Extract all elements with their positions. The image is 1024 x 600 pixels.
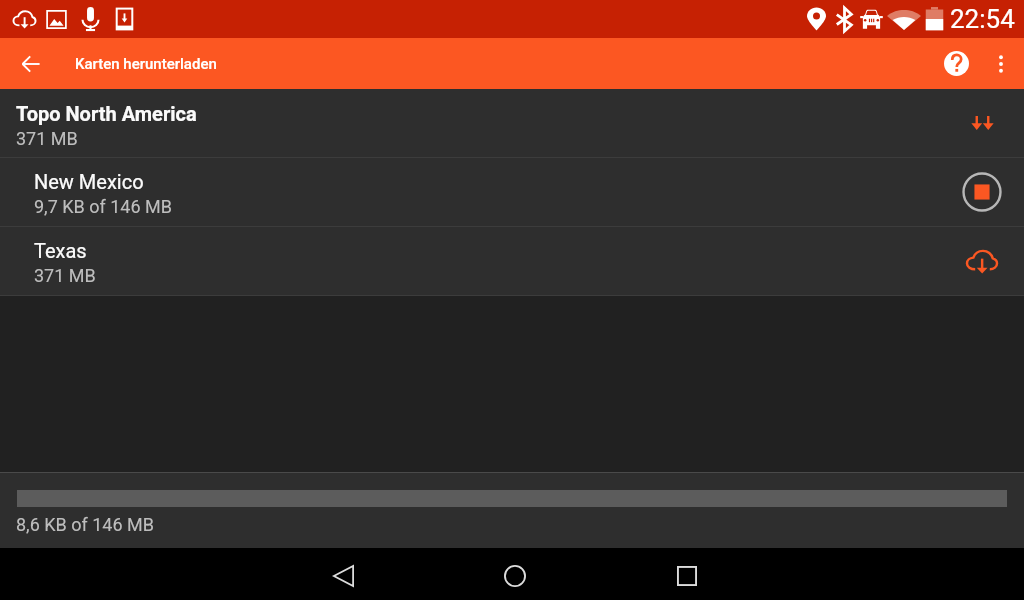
button[interactable]: Download all [940, 89, 1024, 157]
button[interactable]: Home [477, 550, 553, 600]
staticText: 9,7 KB of 146 MB [34, 196, 172, 217]
button[interactable]: Back [305, 550, 381, 600]
button[interactable]: Recent apps [649, 550, 725, 600]
staticText: 22:54 [950, 4, 1015, 34]
staticText: Topo North America [16, 102, 197, 125]
staticText: 8,6 KB of 146 MB [16, 514, 154, 535]
staticText: Texas [34, 239, 87, 262]
button[interactable]: More options [978, 38, 1024, 89]
button[interactable]: Stop download [940, 158, 1024, 226]
button[interactable]: Help [934, 38, 978, 89]
button[interactable]: Download [940, 227, 1024, 295]
staticText: 371 MB [34, 265, 96, 286]
staticText: 371 MB [16, 128, 78, 149]
button[interactable]: Texas [0, 227, 1024, 295]
button[interactable]: Topo North America [0, 89, 1024, 157]
button[interactable]: Back [0, 38, 62, 89]
staticText: Karten herunterladen [75, 55, 217, 73]
staticText: New Mexico [34, 170, 144, 193]
button[interactable]: New Mexico [0, 158, 1024, 226]
